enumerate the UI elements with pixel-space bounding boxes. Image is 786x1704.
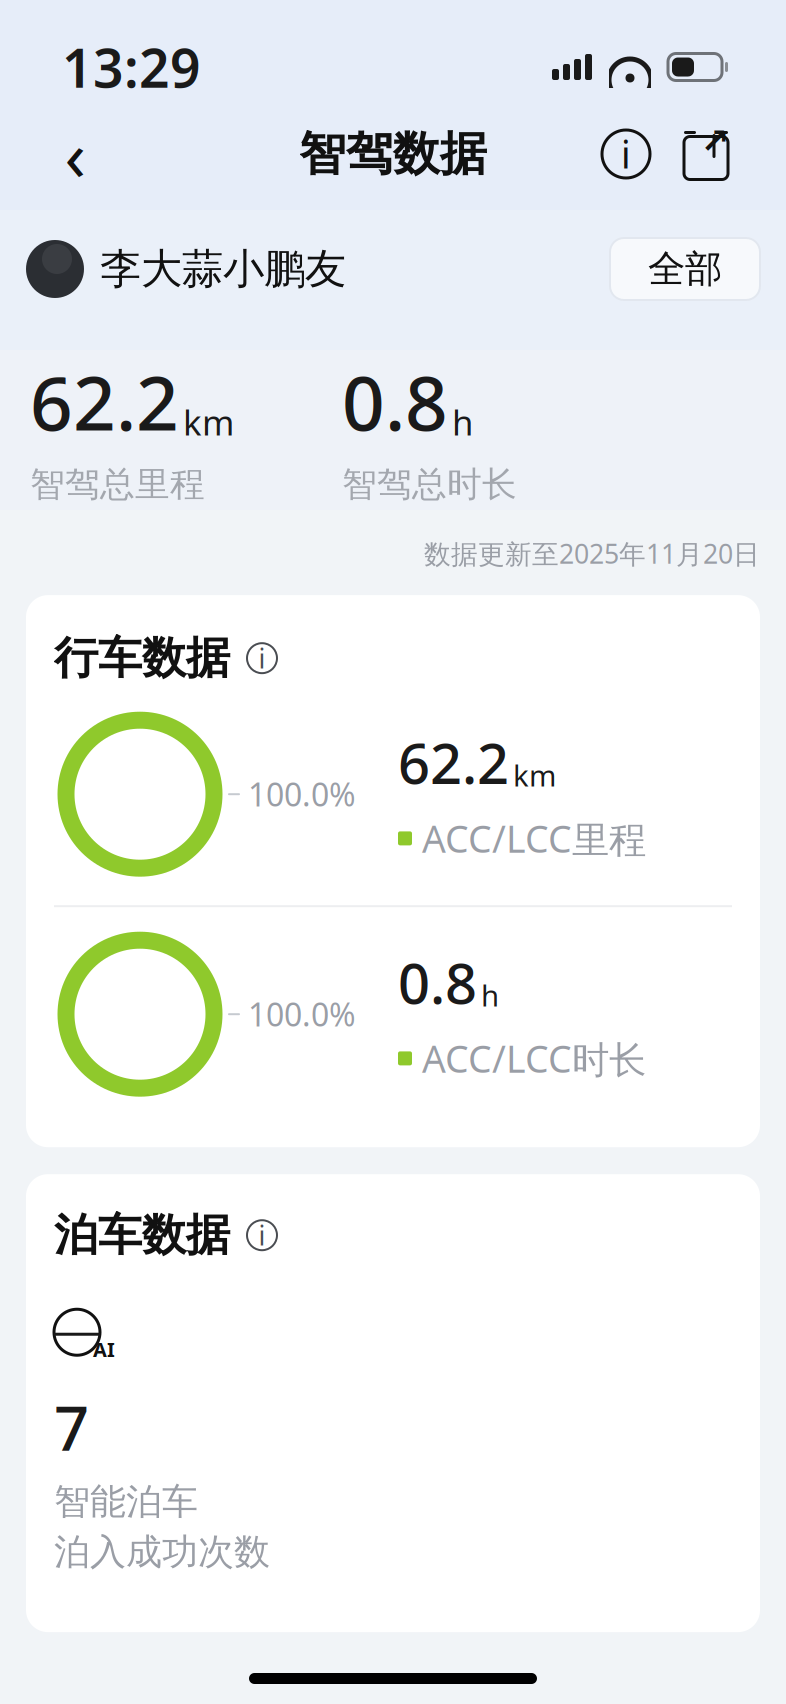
- staticText: 0.8: [398, 945, 477, 1019]
- staticText: 智驾数据: [299, 125, 487, 183]
- staticText: ‹: [64, 108, 85, 200]
- staticText: km: [513, 755, 556, 794]
- staticText: 泊车数据: [54, 1208, 230, 1262]
- staticText: AI: [93, 1336, 115, 1363]
- staticText: 泊入成功次数: [54, 1530, 270, 1574]
- staticText: 13:29: [62, 32, 201, 102]
- button[interactable]: 说明: [594, 122, 658, 186]
- button[interactable]: 返回: [40, 119, 110, 189]
- staticText: ↗: [700, 121, 729, 161]
- button[interactable]: 全部: [610, 238, 760, 300]
- staticText: h: [452, 399, 473, 445]
- staticText: 数据更新至2025年11月20日: [424, 536, 760, 571]
- button[interactable]: 分享: [674, 122, 738, 186]
- staticText: 李大蒜小鹏友: [100, 244, 346, 294]
- staticText: 7: [54, 1386, 89, 1468]
- staticText: 0.8: [342, 352, 448, 451]
- staticText: ACC/LCC里程: [422, 813, 646, 863]
- staticText: 62.2: [30, 352, 179, 451]
- button[interactable]: 李大蒜小鹏友: [26, 240, 346, 298]
- staticText: 智能泊车: [54, 1480, 198, 1524]
- button[interactable]: 说明: [242, 1215, 282, 1255]
- staticText: i: [621, 129, 631, 179]
- staticText: 行车数据: [54, 631, 230, 685]
- staticText: 100.0%: [248, 993, 356, 1035]
- button[interactable]: 说明: [242, 638, 282, 678]
- staticText: h: [481, 975, 499, 1014]
- staticText: ACC/LCC时长: [422, 1033, 646, 1083]
- staticText: i: [258, 1217, 265, 1253]
- staticText: i: [258, 640, 265, 676]
- staticText: km: [183, 399, 234, 445]
- staticText: 62.2: [398, 725, 509, 799]
- staticText: 智驾总时长: [342, 463, 517, 506]
- staticText: 全部: [648, 246, 722, 292]
- staticText: 智驾总里程: [30, 463, 205, 506]
- staticText: 100.0%: [248, 773, 356, 815]
